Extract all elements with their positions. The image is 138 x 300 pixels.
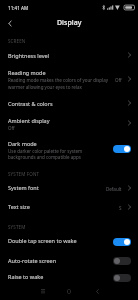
staticText: Off [8,125,15,131]
staticText: SYSTEM FONT [8,171,40,177]
staticText: warmer allowing your eyes to relax [8,84,82,90]
staticText: Reading mode makes the colors of your di… [8,77,109,83]
button[interactable] [0,94,138,110]
button[interactable] [0,249,138,267]
button[interactable] [0,46,138,62]
staticText: S [119,205,122,211]
staticText: Contrast & colors [8,100,53,107]
button[interactable]: Switch on [113,238,131,246]
button[interactable]: Recent apps [35,282,51,300]
button[interactable]: Switch off [113,274,131,282]
staticText: Display [57,18,82,28]
staticText: Raise to wake [8,273,44,280]
staticText: backgrounds and compatible apps [8,154,82,160]
staticText: Auto-rotate screen [8,257,57,264]
button[interactable] [0,179,138,196]
button[interactable]: Back [2,15,18,31]
staticText: 11:41 AM [8,5,29,11]
button[interactable] [0,133,138,163]
button[interactable]: Switch on [113,145,131,153]
staticText: Brightness level [8,52,49,59]
staticText: Reading mode [8,69,46,76]
staticText: Double tap screen to wake [8,237,77,244]
button[interactable]: Back [89,282,105,300]
button[interactable] [0,267,138,283]
button[interactable]: Home [61,282,77,300]
staticText: System font [8,184,39,191]
button[interactable] [0,110,138,133]
button[interactable]: Switch off [113,257,131,265]
button[interactable] [0,232,138,249]
staticText: SYSTEM [8,224,26,230]
button[interactable] [0,196,138,214]
staticText: Default [106,186,122,192]
staticText: Off [115,77,122,83]
staticText: SCREEN [8,38,26,44]
staticText: Ambient display [8,117,50,124]
staticText: Text size [8,203,30,210]
button[interactable] [0,62,138,94]
staticText: Dark mode [8,140,37,147]
staticText: Use darker color palette for system [8,148,83,154]
